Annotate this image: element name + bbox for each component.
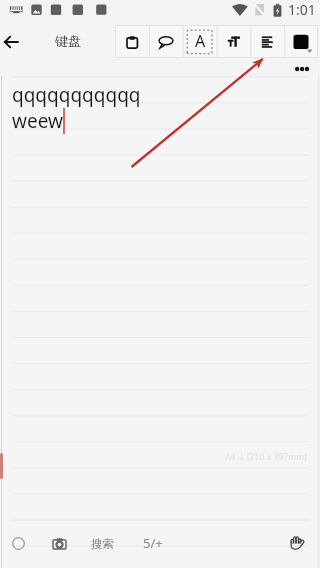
staticText: 搜索 [91,537,114,551]
staticText: A4 ↓ (210 x 297mm) [225,451,307,463]
button[interactable]: 5/+ [138,533,168,553]
button[interactable]: Camera [46,530,72,556]
button[interactable]: More options [289,58,315,80]
button[interactable]: 键盘 [40,27,96,55]
button[interactable]: Font size [216,25,250,58]
button[interactable]: Pen [5,530,31,556]
button[interactable]: Align [250,25,284,58]
button[interactable]: Hand tool [283,529,309,555]
staticText: 键盘 [55,33,81,49]
button[interactable]: Colour [284,25,318,58]
staticText: 5/+ [143,534,163,552]
staticText: A [195,30,205,52]
staticText: qqqqqqqqqqq [12,82,141,108]
staticText: weew [12,108,63,134]
button[interactable]: Text style [182,25,216,58]
button[interactable]: 搜索 [86,534,119,554]
button[interactable]: Back [0,21,36,61]
button[interactable]: Clipboard [115,25,148,58]
button[interactable]: Comment [148,25,182,58]
staticText: 1:01 [288,0,316,19]
